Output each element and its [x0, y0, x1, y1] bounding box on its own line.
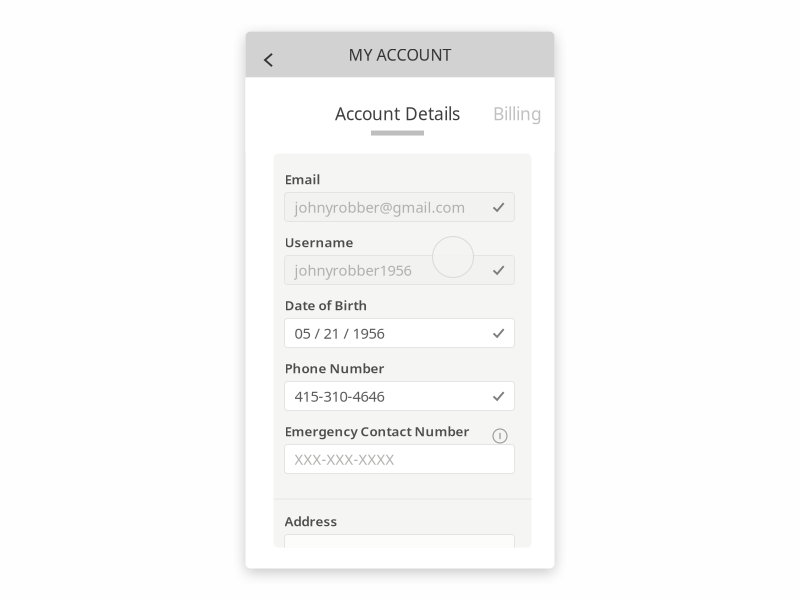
- button[interactable]: Account Details: [327, 92, 467, 144]
- button[interactable]: johnyrobber1956: [284, 255, 514, 284]
- staticText: Date of Birth: [284, 296, 367, 314]
- staticText: MY ACCOUNT: [348, 44, 451, 65]
- button[interactable]: [284, 534, 514, 563]
- button[interactable]: johnyrobber@gmail.com: [284, 192, 514, 221]
- staticText: johnyrobber1956: [294, 260, 411, 280]
- staticText: Email: [284, 170, 320, 188]
- button[interactable]: 05 / 21 / 1956: [284, 318, 514, 347]
- staticText: 05 / 21 / 1956: [294, 323, 384, 343]
- staticText: XXX-XXX-XXXX: [294, 449, 394, 469]
- staticText: Address: [284, 512, 337, 530]
- staticText: Emergency Contact Number: [284, 422, 469, 440]
- button[interactable]: Billing: [487, 92, 547, 144]
- staticText: 415-310-4646: [294, 386, 384, 406]
- button[interactable]: Back: [245, 31, 287, 77]
- button[interactable]: 415-310-4646: [284, 381, 514, 410]
- staticText: Billing: [493, 102, 542, 125]
- button[interactable]: About emergency contact number: [491, 420, 508, 442]
- staticText: Account Details: [335, 102, 460, 125]
- staticText: Username: [284, 233, 353, 251]
- staticText: johnyrobber@gmail.com: [294, 197, 465, 217]
- staticText: Phone Number: [284, 359, 384, 377]
- button[interactable]: XXX-XXX-XXXX: [284, 444, 514, 473]
